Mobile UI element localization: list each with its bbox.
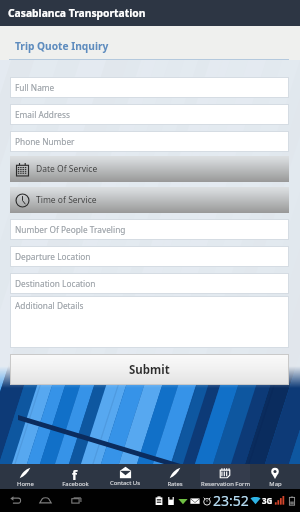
staticText: Home [17, 480, 34, 488]
staticText: Departure Location [15, 251, 91, 262]
staticText: Additional Details [15, 300, 84, 311]
staticText: Destination Location [15, 278, 96, 289]
button[interactable]: Submit [10, 354, 289, 385]
staticText: 23:52 [213, 491, 249, 510]
staticText: Time of Service [36, 194, 97, 206]
staticText: Facebook [62, 480, 89, 488]
staticText: Contact Us [110, 479, 140, 487]
button[interactable]: Phone Number [10, 131, 289, 152]
staticText: Number Of People Traveling [15, 224, 126, 235]
button[interactable]: Departure Location [10, 246, 289, 267]
button[interactable]: Contact Us [100, 464, 150, 489]
staticText: Date Of Service [36, 163, 98, 175]
staticText: 3G [262, 495, 273, 506]
button[interactable]: Casablanca Transportation [0, 0, 300, 26]
staticText: Casablanca Transportation [8, 6, 146, 20]
staticText: Rates [167, 480, 183, 488]
staticText: f [72, 466, 78, 480]
button[interactable]: Number Of People Traveling [10, 219, 289, 240]
staticText: Email Address [15, 109, 70, 120]
button[interactable]: Full Name [10, 77, 289, 98]
staticText: Submit [129, 362, 170, 378]
button[interactable]: Date Of Service [10, 156, 289, 182]
button[interactable]: Additional Details [10, 296, 289, 348]
button[interactable]: Email Address [10, 104, 289, 125]
staticText: Phone Number [15, 136, 75, 147]
staticText: Map [269, 480, 282, 488]
staticText: Trip Quote Inquiry [15, 39, 109, 53]
button[interactable]: f [50, 464, 100, 489]
button[interactable]: Home [39, 494, 52, 507]
button[interactable]: Home [0, 464, 50, 489]
button[interactable]: Time of Service [10, 187, 289, 213]
button[interactable]: Destination Location [10, 273, 289, 294]
button[interactable]: Rates [150, 464, 200, 489]
staticText: Full Name [15, 82, 55, 93]
button[interactable]: Map [250, 464, 300, 489]
button[interactable]: Recent apps [70, 494, 83, 507]
button[interactable]: Reservation Form [200, 464, 250, 489]
staticText: Reservation Form [201, 480, 250, 488]
button[interactable]: Back [9, 494, 22, 507]
